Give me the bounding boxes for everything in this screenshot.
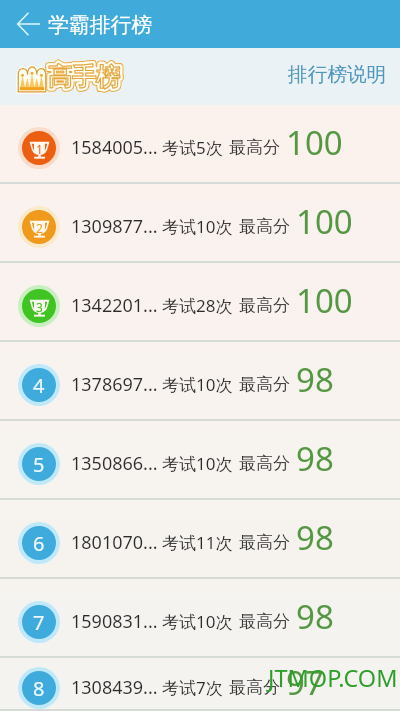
staticText: 考试10次 <box>162 452 233 475</box>
staticText: 最高分 <box>239 453 290 474</box>
staticText: 98 <box>296 515 334 560</box>
button[interactable]: 1 <box>0 105 400 184</box>
button[interactable]: 3 <box>0 263 400 342</box>
staticText: 最高分 <box>229 677 280 698</box>
staticText: 最高分 <box>239 216 290 237</box>
staticText: 1584005... <box>71 135 158 160</box>
staticText: 1 <box>36 141 43 157</box>
button[interactable]: 2 <box>0 184 400 263</box>
staticText: 5 <box>33 451 45 478</box>
staticText: 高手榜 <box>48 62 120 92</box>
staticText: 7 <box>33 609 45 636</box>
staticText: 考试10次 <box>162 610 233 633</box>
staticText: 最高分 <box>239 295 290 316</box>
staticText: 100 <box>296 199 353 244</box>
button[interactable]: 7 <box>0 579 400 658</box>
staticText: 考试10次 <box>162 215 233 238</box>
staticText: 排行榜说明 <box>288 62 387 87</box>
staticText: 高手榜 <box>48 62 120 92</box>
staticText: 1350866... <box>71 451 158 476</box>
staticText: 100 <box>286 120 343 165</box>
staticText: 1309877... <box>71 214 158 239</box>
staticText: JTMOP.COM <box>268 662 398 694</box>
staticText: 最高分 <box>239 374 290 395</box>
staticText: 最高分 <box>239 532 290 553</box>
staticText: 考试11次 <box>162 531 233 554</box>
button[interactable]: Back <box>0 0 48 48</box>
staticText: 考试5次 <box>162 136 223 159</box>
staticText: 98 <box>296 436 334 481</box>
staticText: 97 <box>286 660 324 705</box>
staticText: 3 <box>36 299 43 315</box>
button[interactable]: 排行榜说明 <box>272 56 400 97</box>
button[interactable]: 5 <box>0 421 400 500</box>
staticText: 100 <box>296 278 353 323</box>
staticText: 1801070... <box>71 530 158 555</box>
staticText: 最高分 <box>239 611 290 632</box>
staticText: 6 <box>33 530 45 557</box>
staticText: 98 <box>296 594 334 639</box>
staticText: 学霸排行榜 <box>48 12 152 38</box>
staticText: 2 <box>36 220 43 236</box>
staticText: 考试7次 <box>162 676 223 699</box>
staticText: 4 <box>33 372 45 399</box>
staticText: 考试28次 <box>162 294 233 317</box>
button[interactable]: 6 <box>0 500 400 579</box>
button[interactable]: 4 <box>0 342 400 421</box>
staticText: 高手榜 <box>48 62 120 92</box>
staticText: 高手榜 <box>48 62 120 92</box>
staticText: 考试10次 <box>162 373 233 396</box>
staticText: 1590831... <box>71 609 158 634</box>
staticText: 8 <box>33 675 45 702</box>
button[interactable]: 8 <box>0 658 400 711</box>
staticText: 1308439... <box>71 675 158 700</box>
staticText: 1342201... <box>71 293 158 318</box>
staticText: 1378697... <box>71 372 158 397</box>
staticText: 98 <box>296 357 334 402</box>
staticText: 最高分 <box>229 137 280 158</box>
